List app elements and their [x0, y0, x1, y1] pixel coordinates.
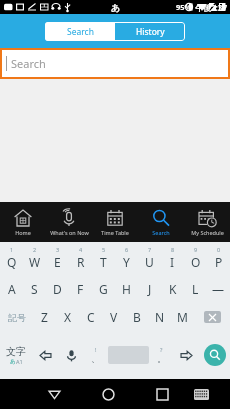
staticText: N — [155, 309, 165, 325]
button[interactable]: 9 — [184, 245, 207, 275]
staticText: History — [136, 26, 165, 38]
button[interactable]: M — [171, 303, 194, 331]
button[interactable]: Voice input — [58, 331, 84, 379]
staticText: T — [100, 254, 107, 270]
staticText: Search — [67, 26, 94, 38]
staticText: 午後2:37 — [195, 2, 227, 13]
button[interactable]: 2 — [23, 245, 46, 275]
staticText: B — [133, 309, 141, 325]
button[interactable]: D — [46, 275, 69, 303]
staticText: L — [192, 281, 199, 297]
staticText: Z — [41, 309, 48, 325]
staticText: G — [99, 281, 108, 297]
button[interactable]: 7 — [138, 245, 161, 275]
button[interactable]: L — [184, 275, 207, 303]
staticText: Home — [15, 229, 31, 236]
staticText: Time Table — [101, 229, 129, 236]
staticText: 0 — [217, 246, 221, 253]
button[interactable]: N — [148, 303, 171, 331]
staticText: W — [29, 254, 41, 270]
staticText: My Schedule — [191, 229, 224, 236]
staticText: P — [215, 254, 223, 270]
staticText: V — [110, 309, 118, 325]
button[interactable]: S — [23, 275, 46, 303]
staticText: What's on Now — [50, 229, 89, 236]
staticText: Y — [123, 254, 130, 270]
staticText: O — [191, 254, 201, 270]
button[interactable]: ! — [84, 331, 107, 379]
button[interactable]: 6 — [115, 245, 138, 275]
button[interactable]: Z — [33, 303, 56, 331]
staticText: Q — [7, 254, 17, 270]
button[interactable]: Switch keyboard — [184, 379, 218, 409]
button[interactable]: 0 — [207, 245, 230, 275]
staticText: 5 — [102, 246, 106, 253]
button[interactable]: Home — [0, 202, 46, 242]
staticText: あ — [10, 358, 16, 365]
staticText: 9 — [194, 246, 198, 253]
button[interactable]: Recent apps — [145, 379, 179, 409]
staticText: I — [170, 254, 175, 270]
staticText: 6 — [125, 246, 129, 253]
staticText: 8 — [171, 246, 175, 253]
button[interactable]: X — [56, 303, 79, 331]
button[interactable]: 記号 — [0, 303, 33, 331]
staticText: 2 — [33, 246, 37, 253]
button[interactable]: 5 — [92, 245, 115, 275]
staticText: U — [145, 254, 154, 270]
button[interactable]: Backspace — [194, 303, 230, 331]
staticText: 95% — [176, 2, 192, 12]
button[interactable]: Cursor right — [173, 331, 199, 379]
button[interactable]: F — [69, 275, 92, 303]
staticText: H — [122, 281, 131, 297]
staticText: ! — [95, 346, 97, 353]
staticText: Search — [152, 229, 170, 236]
staticText: — — [212, 281, 225, 297]
staticText: K — [169, 281, 177, 297]
staticText: 1 — [10, 246, 14, 253]
staticText: ? — [160, 346, 163, 353]
staticText: S — [31, 281, 38, 297]
button[interactable]: ? — [150, 331, 173, 379]
button[interactable]: Search — [199, 331, 230, 379]
button[interactable]: Search — [45, 22, 115, 41]
staticText: A — [8, 281, 16, 297]
staticText: 記号 — [8, 312, 26, 323]
staticText: X — [64, 309, 72, 325]
button[interactable]: Cursor left — [32, 331, 58, 379]
staticText: 7 — [148, 246, 152, 253]
staticText: 。 — [157, 353, 166, 364]
button[interactable]: 1 — [0, 245, 23, 275]
staticText: 文字 — [6, 345, 26, 358]
button[interactable]: Search — [138, 202, 184, 242]
button[interactable]: — — [207, 275, 230, 303]
staticText: Search — [11, 56, 46, 71]
button[interactable]: B — [125, 303, 148, 331]
button[interactable]: My Schedule — [184, 202, 230, 242]
button[interactable]: Hide keyboard — [37, 379, 71, 409]
button[interactable]: Search — [0, 48, 230, 79]
button[interactable]: J — [138, 275, 161, 303]
staticText: M — [177, 309, 188, 325]
button[interactable]: Time Table — [92, 202, 138, 242]
button[interactable]: History — [115, 22, 185, 41]
button[interactable]: 3 — [46, 245, 69, 275]
staticText: 4 — [79, 246, 83, 253]
button[interactable]: V — [102, 303, 125, 331]
staticText: A1 — [16, 358, 23, 365]
button[interactable]: G — [92, 275, 115, 303]
button[interactable]: 文字 — [0, 331, 32, 379]
button[interactable]: Space — [107, 331, 150, 379]
button[interactable]: Home — [91, 379, 125, 409]
button[interactable]: H — [115, 275, 138, 303]
button[interactable]: What's on Now — [46, 202, 92, 242]
staticText: R — [77, 254, 85, 270]
button[interactable]: A — [0, 275, 23, 303]
button[interactable]: K — [161, 275, 184, 303]
staticText: 、 — [91, 353, 100, 364]
staticText: J — [148, 281, 152, 297]
button[interactable]: 4 — [69, 245, 92, 275]
button[interactable]: C — [79, 303, 102, 331]
button[interactable]: 8 — [161, 245, 184, 275]
staticText: F — [77, 281, 84, 297]
